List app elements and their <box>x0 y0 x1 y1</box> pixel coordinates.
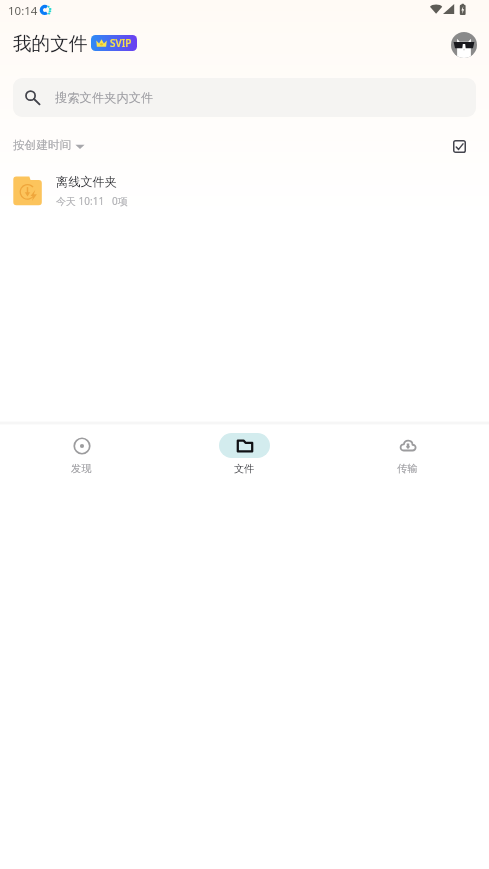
button[interactable]: 发现 <box>0 424 163 480</box>
staticText: 传输 <box>397 462 418 475</box>
button[interactable]: 搜索文件夹内文件 <box>13 78 476 117</box>
staticText: 10:14 <box>8 3 38 19</box>
button[interactable]: Select files <box>449 136 470 157</box>
button[interactable]: 传输 <box>326 424 489 480</box>
button[interactable]: 文件 <box>163 424 326 480</box>
staticText: 离线文件夹 <box>56 174 117 189</box>
button[interactable]: Profile <box>451 32 477 58</box>
button[interactable]: 按创建时间 <box>7 132 91 159</box>
button[interactable]: SVIP <box>91 35 137 51</box>
staticText: 今天 10:11 0项 <box>56 194 128 208</box>
staticText: 发现 <box>71 462 92 475</box>
button[interactable]: 离线文件夹 <box>0 169 489 214</box>
staticText: 文件 <box>234 462 255 475</box>
staticText: SVIP <box>110 36 132 50</box>
staticText: 搜索文件夹内文件 <box>55 90 154 105</box>
staticText: 我的文件 <box>13 32 88 55</box>
staticText: 按创建时间 <box>13 138 71 153</box>
